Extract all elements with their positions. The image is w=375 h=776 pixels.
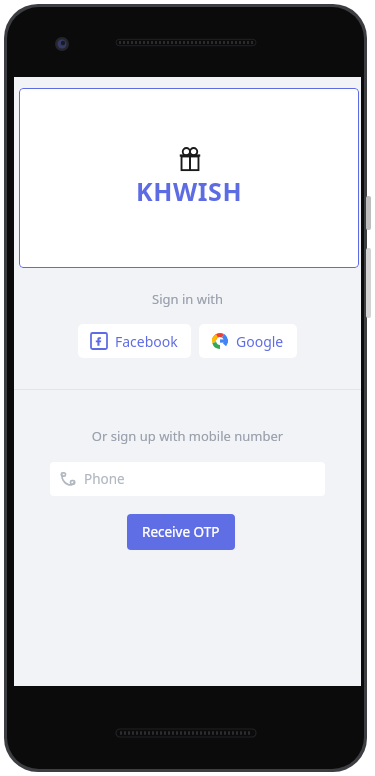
staticText: KHWISH [136,174,243,208]
staticText: Or sign up with mobile number [14,427,361,445]
staticText: Receive OTP [142,523,220,541]
staticText: Sign in with [14,290,361,308]
button[interactable]: Sign in with Facebook [78,324,191,358]
staticText: Facebook [115,332,178,351]
button[interactable]: Sign in with Google [199,324,297,358]
other: Sign in with Facebook [91,333,107,349]
other: Sign in with Google [212,333,228,349]
staticText: Phone [84,470,125,488]
staticText: Google [236,332,284,351]
button[interactable]: Receive OTP [127,514,235,550]
button[interactable]: Phone [50,462,325,496]
